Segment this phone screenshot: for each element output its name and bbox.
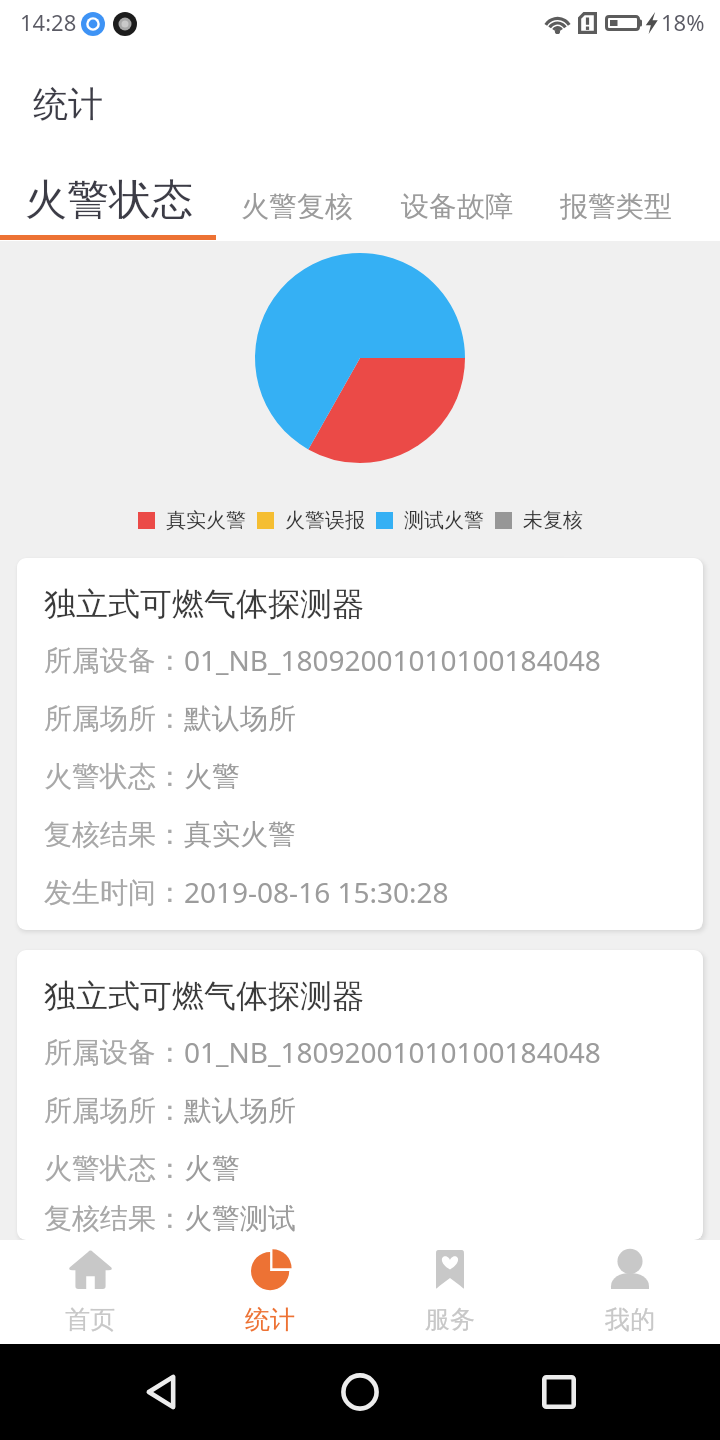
- button[interactable]: 设备故障: [377, 148, 536, 241]
- staticText: 独立式可燃气体探测器: [44, 584, 364, 624]
- staticText: 所属场所：: [44, 1093, 184, 1128]
- staticText: 火警状态：: [44, 759, 184, 794]
- staticText: 真实火警: [184, 817, 296, 852]
- staticText: 复核结果：: [44, 817, 184, 852]
- button[interactable]: Home: [312, 1344, 408, 1440]
- button[interactable]: 火警复核: [217, 148, 377, 241]
- staticText: 真实火警: [166, 508, 246, 533]
- staticText: 火警状态：: [44, 1151, 184, 1186]
- staticText: 01_NB_18092001010100184048: [184, 641, 601, 679]
- staticText: 未复核: [523, 508, 583, 533]
- staticText: 默认场所: [184, 701, 296, 736]
- staticText: 所属设备：: [44, 1035, 184, 1070]
- staticText: 报警类型: [560, 189, 672, 224]
- button[interactable]: 独立式可燃气体探测器: [17, 950, 703, 1240]
- staticText: 我的: [605, 1304, 655, 1335]
- staticText: 统计: [33, 82, 103, 126]
- staticText: 所属场所：: [44, 701, 184, 736]
- staticText: 独立式可燃气体探测器: [44, 976, 364, 1016]
- staticText: 火警: [184, 1151, 240, 1186]
- button[interactable]: 我的: [540, 1240, 720, 1344]
- button[interactable]: 报警类型: [536, 148, 695, 241]
- button[interactable]: 独立式可燃气体探测器: [17, 558, 703, 930]
- button[interactable]: 统计: [180, 1240, 360, 1344]
- staticText: 18%: [661, 7, 705, 37]
- staticText: 火警测试: [184, 1201, 296, 1236]
- button[interactable]: Recents: [511, 1344, 607, 1440]
- staticText: 设备故障: [401, 189, 513, 224]
- staticText: 首页: [65, 1304, 115, 1335]
- staticText: 所属设备：: [44, 643, 184, 678]
- staticText: 火警状态: [25, 174, 193, 227]
- staticText: 14:28: [20, 7, 77, 37]
- staticText: 2019-08-16 15:30:28: [184, 873, 449, 911]
- staticText: 01_NB_18092001010100184048: [184, 1033, 601, 1071]
- staticText: 统计: [245, 1304, 295, 1335]
- staticText: 服务: [425, 1304, 475, 1335]
- staticText: 火警复核: [241, 189, 353, 224]
- staticText: 测试火警: [404, 508, 484, 533]
- staticText: 火警: [184, 759, 240, 794]
- button[interactable]: 首页: [0, 1240, 180, 1344]
- button[interactable]: 服务: [360, 1240, 540, 1344]
- staticText: 复核结果：: [44, 1201, 184, 1236]
- staticText: 默认场所: [184, 1093, 296, 1128]
- button[interactable]: Back: [113, 1344, 209, 1440]
- staticText: 发生时间：: [44, 875, 184, 910]
- staticText: 火警误报: [285, 508, 365, 533]
- button[interactable]: 火警状态: [0, 148, 217, 241]
